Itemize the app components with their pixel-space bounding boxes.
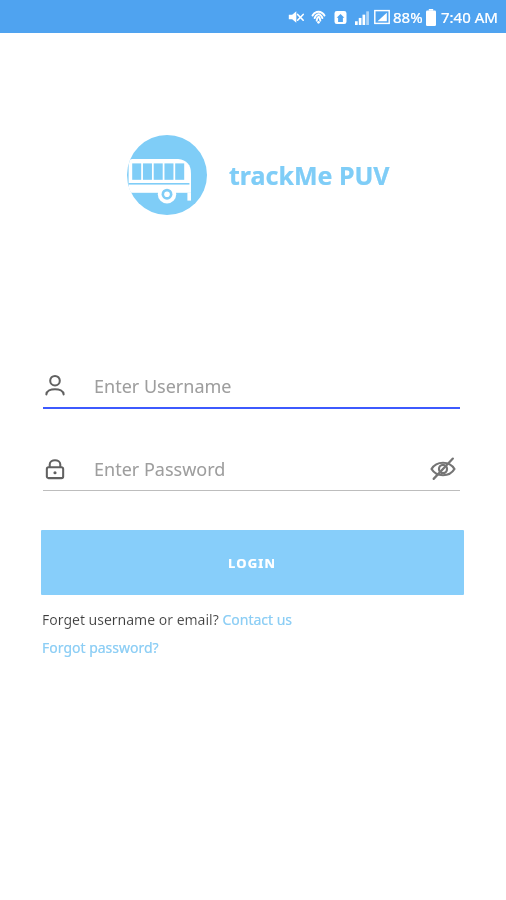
staticText: Enter Password	[94, 457, 226, 482]
other: Password	[43, 457, 67, 481]
other: Username	[43, 374, 67, 398]
button[interactable]: LOGIN	[41, 530, 464, 595]
staticText: Forgot password?	[42, 638, 159, 657]
staticText: 7:40 AM	[441, 7, 498, 27]
button[interactable]: Show password	[426, 452, 460, 486]
staticText: trackMe PUV	[229, 158, 390, 192]
button[interactable]: Username	[43, 365, 460, 409]
staticText: Forget username or email? Contact us	[42, 610, 293, 629]
button[interactable]: Forgot password?	[42, 638, 159, 657]
staticText: LOGIN	[228, 554, 277, 572]
button[interactable]: Password	[43, 448, 460, 491]
staticText: 88%	[393, 7, 423, 27]
staticText: Enter Username	[94, 374, 232, 399]
button[interactable]: Forget username or email? Contact us	[42, 610, 293, 629]
